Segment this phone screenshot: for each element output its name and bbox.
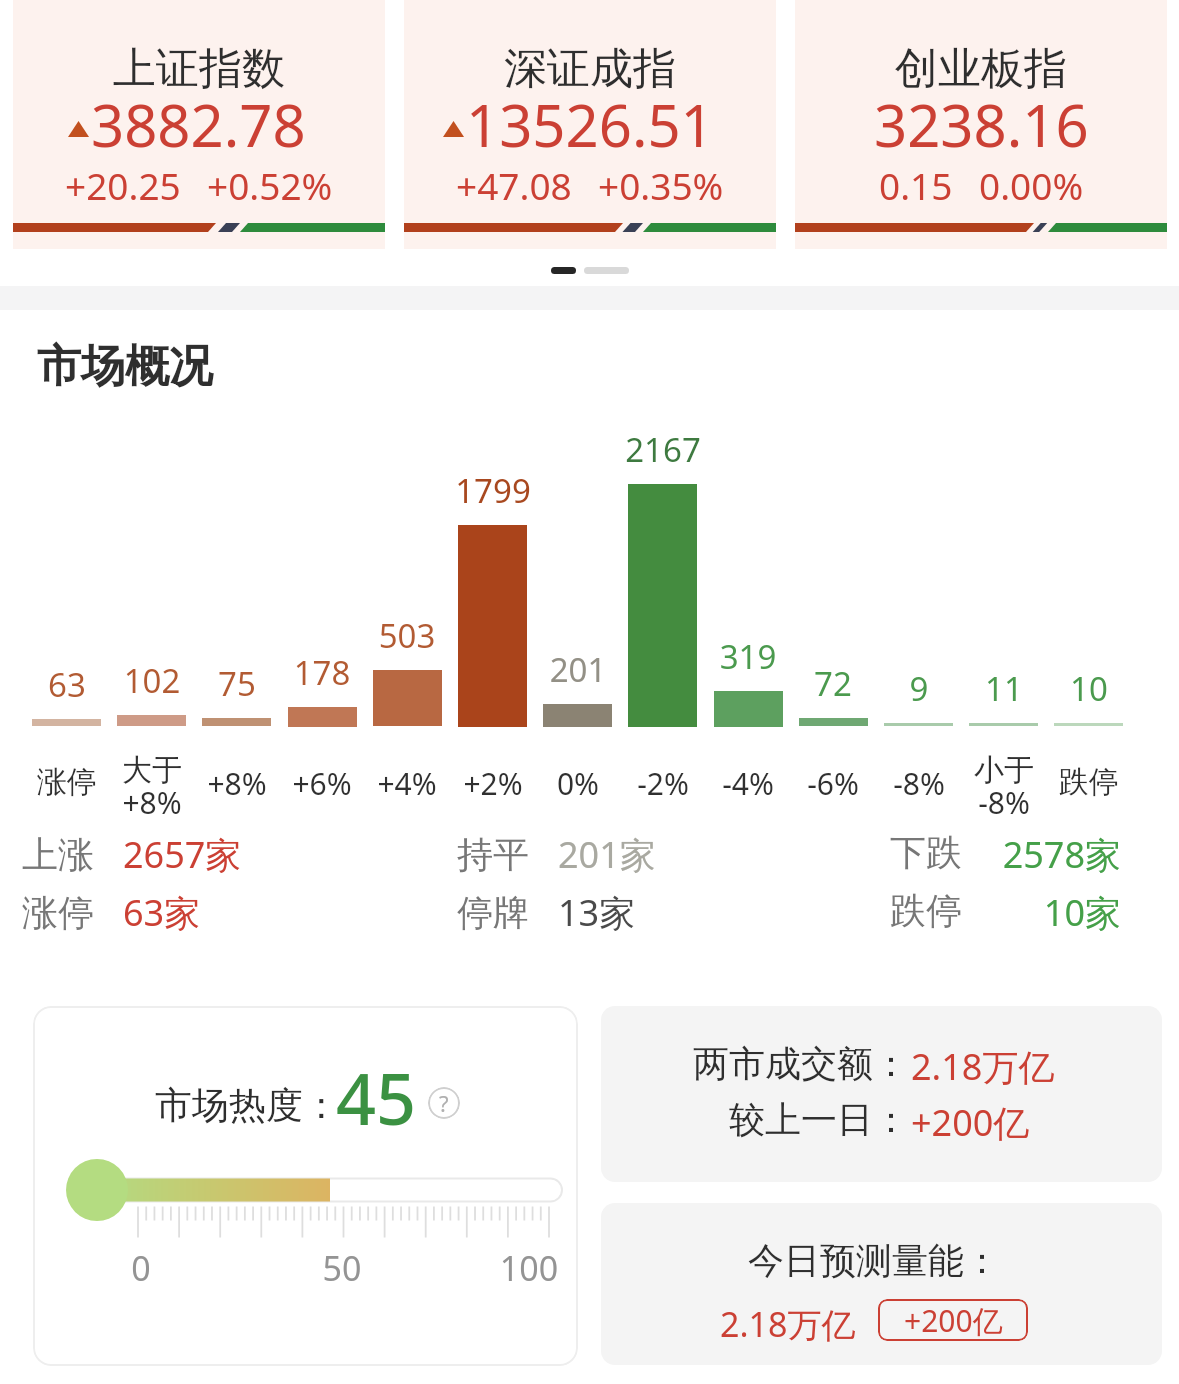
staticText: 大于 +8% xyxy=(92,751,212,823)
staticText: +200亿 xyxy=(911,1098,1030,1147)
button[interactable]: 深证成指 xyxy=(404,0,776,249)
staticText: 45 xyxy=(336,1050,417,1145)
staticText: 下跌 xyxy=(890,830,962,875)
staticText: +20.25 xyxy=(65,160,181,210)
staticText: 0.15 xyxy=(879,160,953,210)
staticText: 跌停 xyxy=(1029,763,1149,801)
button[interactable]: 创业板指 xyxy=(795,0,1167,249)
staticText: +0.52% xyxy=(207,160,333,210)
staticText: 75 xyxy=(177,661,297,706)
staticText: 市场概况 xyxy=(37,339,213,394)
button[interactable]: 帮助 xyxy=(428,1087,460,1119)
staticText: -6% xyxy=(773,763,893,804)
staticText: 深证成指 xyxy=(504,42,676,96)
staticText: 停牌 xyxy=(457,890,529,935)
staticText: 0.00% xyxy=(979,160,1084,210)
staticText: 63 xyxy=(7,662,127,707)
staticText: 100 xyxy=(481,1245,577,1291)
button[interactable]: 两市成交额： xyxy=(601,1006,1162,1182)
staticText: 13526.51 xyxy=(466,85,714,164)
staticText: +200亿 xyxy=(904,1300,1003,1341)
staticText: 小于 -8% xyxy=(944,751,1064,823)
staticText: 11 xyxy=(944,666,1064,711)
staticText: +0.35% xyxy=(598,160,724,210)
staticText: 13家 xyxy=(558,888,636,937)
staticText: 上证指数 xyxy=(113,42,285,96)
staticText: 178 xyxy=(262,650,382,695)
staticText: 涨停 xyxy=(7,763,127,801)
staticText: 3882.78 xyxy=(91,85,306,164)
staticText: 201 xyxy=(518,647,638,692)
staticText: 10家 xyxy=(960,888,1121,937)
staticText: 涨停 xyxy=(22,890,94,935)
staticText: 1799 xyxy=(433,468,553,513)
staticText: 201家 xyxy=(558,830,656,879)
staticText: 市场热度： xyxy=(155,1082,340,1129)
staticText: 今日预测量能： xyxy=(748,1238,1000,1283)
staticText: 两市成交额： xyxy=(641,1041,909,1086)
staticText: 上涨 xyxy=(22,832,94,877)
staticText: 2167 xyxy=(603,427,723,472)
staticText: +4% xyxy=(347,763,467,804)
staticText: 0% xyxy=(518,763,638,804)
staticText: 较上一日： xyxy=(641,1097,909,1142)
staticText: 9 xyxy=(859,666,979,711)
staticText: 72 xyxy=(773,661,893,706)
staticText: 319 xyxy=(688,634,808,679)
staticText: -2% xyxy=(603,763,723,804)
staticText: ? xyxy=(439,1088,449,1118)
staticText: +8% xyxy=(177,763,297,804)
staticText: 创业板指 xyxy=(895,42,1067,96)
staticText: +2% xyxy=(433,763,553,804)
staticText: -4% xyxy=(688,763,808,804)
button[interactable]: 上证指数 xyxy=(13,0,385,249)
staticText: 2578家 xyxy=(960,830,1121,879)
staticText: 10 xyxy=(1029,666,1149,711)
staticText: 持平 xyxy=(457,832,529,877)
staticText: 2.18万亿 xyxy=(720,1301,856,1347)
staticText: 102 xyxy=(92,658,212,703)
staticText: +47.08 xyxy=(456,160,572,210)
button[interactable]: 今日预测量能： xyxy=(601,1203,1162,1365)
staticText: 0 xyxy=(93,1245,189,1291)
staticText: 503 xyxy=(347,613,467,658)
staticText: 63家 xyxy=(123,888,201,937)
staticText: +6% xyxy=(262,763,382,804)
staticText: 2.18万亿 xyxy=(911,1042,1055,1091)
staticText: 3238.16 xyxy=(874,85,1089,164)
staticText: -8% xyxy=(859,763,979,804)
button[interactable]: 市场热度： xyxy=(33,1006,578,1366)
staticText: 跌停 xyxy=(890,888,962,933)
staticText: 2657家 xyxy=(123,830,242,879)
staticText: 50 xyxy=(294,1245,390,1291)
